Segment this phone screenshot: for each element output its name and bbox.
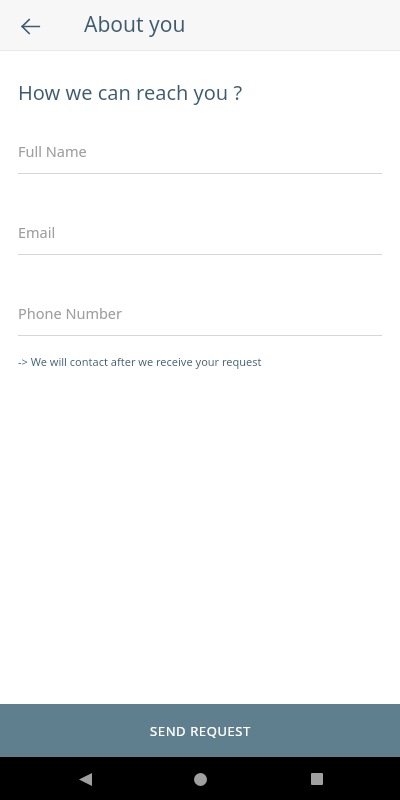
button[interactable]: Full Name (18, 141, 382, 174)
button[interactable]: Email (18, 222, 382, 255)
button[interactable]: Phone Number (18, 303, 382, 336)
staticText: Email (18, 222, 56, 242)
staticText: -> We will contact after we receive your… (18, 354, 262, 369)
button[interactable]: Back (8, 4, 52, 48)
staticText: How we can reach you ? (18, 79, 243, 106)
button[interactable]: SEND REQUEST (0, 704, 400, 757)
button[interactable]: Home (180, 759, 220, 799)
staticText: About you (84, 10, 186, 39)
staticText: SEND REQUEST (150, 722, 251, 740)
staticText: Full Name (18, 141, 87, 161)
button[interactable]: Back (65, 759, 105, 799)
staticText: Phone Number (18, 303, 123, 323)
button[interactable]: Recent apps (297, 759, 337, 799)
